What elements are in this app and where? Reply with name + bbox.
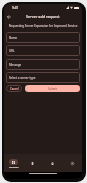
staticText: Cancel xyxy=(10,87,19,91)
staticText: Submit xyxy=(48,87,57,91)
button[interactable]: URL xyxy=(6,45,80,56)
button[interactable]: Dashboard xyxy=(4,154,23,172)
staticText: 9:41 xyxy=(12,6,19,10)
staticText: Requesting Server Expansion for Improved… xyxy=(5,24,81,28)
staticText: Server add request xyxy=(26,14,60,19)
button[interactable]: Name xyxy=(6,32,80,43)
button[interactable]: Back xyxy=(5,13,12,20)
staticText: Select a server type xyxy=(9,76,36,80)
button[interactable]: Submit xyxy=(25,85,80,92)
button[interactable]: Account xyxy=(62,154,82,172)
button[interactable]: Servers xyxy=(23,154,42,172)
staticText: URL xyxy=(9,49,15,53)
button[interactable]: Cancel xyxy=(6,85,22,92)
staticText: Name xyxy=(9,36,18,40)
button[interactable]: Select a server type xyxy=(6,72,80,83)
button[interactable]: Message xyxy=(6,59,80,70)
button[interactable]: Home xyxy=(42,154,62,172)
staticText: Dashboard xyxy=(9,166,19,168)
staticText: Message xyxy=(9,63,22,67)
